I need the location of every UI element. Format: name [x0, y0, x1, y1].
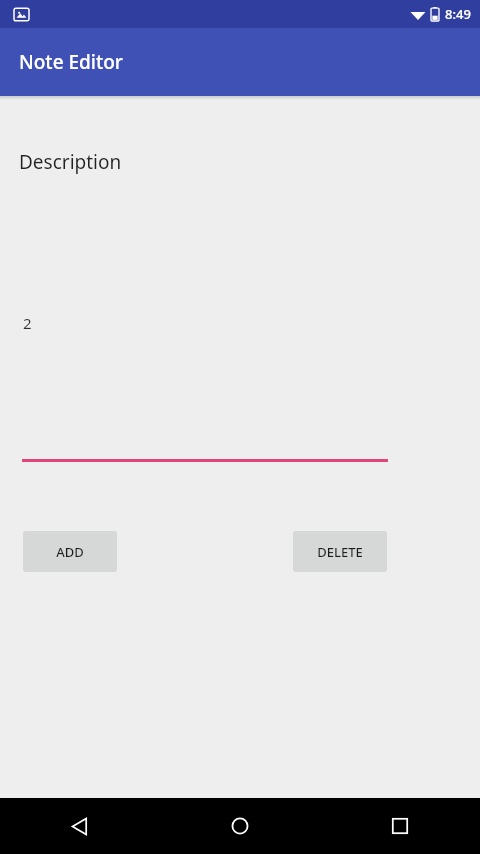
staticText: Note Editor — [19, 49, 123, 75]
staticText: 8:49 — [445, 5, 471, 23]
button[interactable]: ADD — [23, 531, 117, 572]
staticText: 2 — [23, 313, 32, 333]
button[interactable]: Recent apps — [320, 798, 480, 854]
staticText: DELETE — [317, 543, 363, 561]
button[interactable]: DELETE — [293, 531, 387, 572]
button[interactable]: Back — [0, 798, 160, 854]
button[interactable]: Home — [160, 798, 320, 854]
staticText: Description — [19, 149, 122, 175]
staticText: ADD — [56, 543, 84, 561]
